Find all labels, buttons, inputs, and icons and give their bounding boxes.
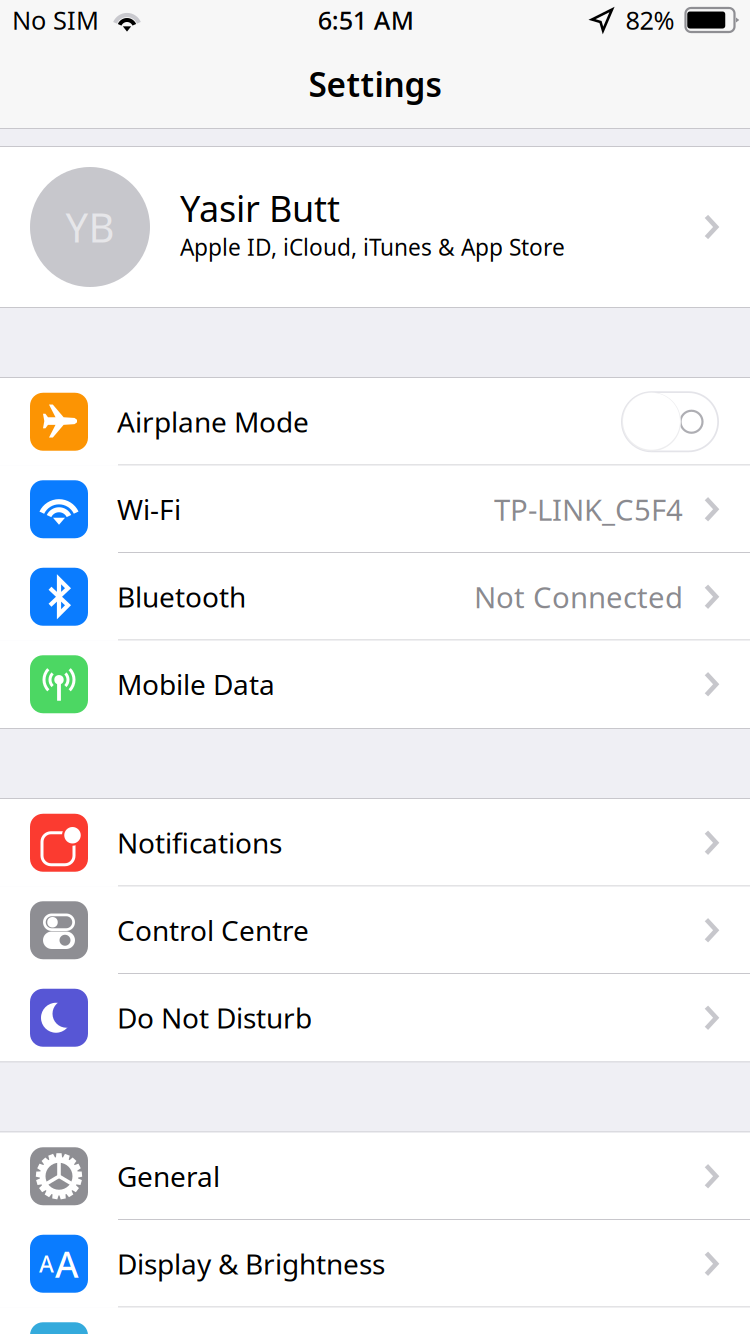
- button[interactable]: Bluetooth: [0, 553, 750, 640]
- staticText: Control Centre: [117, 912, 309, 949]
- button[interactable]: Control Centre: [0, 886, 750, 974]
- staticText: General: [117, 1158, 220, 1195]
- staticText: 82%: [625, 3, 674, 37]
- button[interactable]: Notifications: [0, 799, 750, 886]
- staticText: TP-LINK_C5F4: [494, 490, 683, 529]
- button[interactable]: Do Not Disturb: [0, 974, 750, 1061]
- button[interactable]: General: [0, 1132, 750, 1220]
- staticText: Settings: [308, 62, 441, 106]
- staticText: No SIM: [12, 3, 99, 37]
- staticText: Yasir Butt: [180, 184, 340, 232]
- button[interactable]: Mobile Data: [0, 640, 750, 728]
- staticText: 6:51 AM: [318, 3, 414, 37]
- staticText: Do Not Disturb: [117, 999, 312, 1036]
- staticText: Wi-Fi: [117, 491, 181, 528]
- staticText: Display & Brightness: [117, 1245, 385, 1282]
- staticText: Mobile Data: [117, 666, 275, 703]
- staticText: Apple ID, iCloud, iTunes & App Store: [180, 232, 565, 262]
- button[interactable]: A: [0, 1220, 750, 1307]
- staticText: YB: [65, 200, 114, 253]
- button[interactable]: Wi-Fi: [0, 465, 750, 553]
- staticText: Notifications: [117, 824, 282, 861]
- staticText: Not Connected: [474, 577, 683, 616]
- staticText: Airplane Mode: [117, 403, 309, 440]
- staticText: A: [39, 1249, 54, 1279]
- button[interactable]: Airplane Mode: [0, 378, 750, 465]
- button[interactable]: Wallpaper: [0, 1307, 750, 1334]
- staticText: Bluetooth: [117, 578, 246, 615]
- staticText: A: [55, 1240, 79, 1288]
- button[interactable]: YB: [0, 147, 750, 307]
